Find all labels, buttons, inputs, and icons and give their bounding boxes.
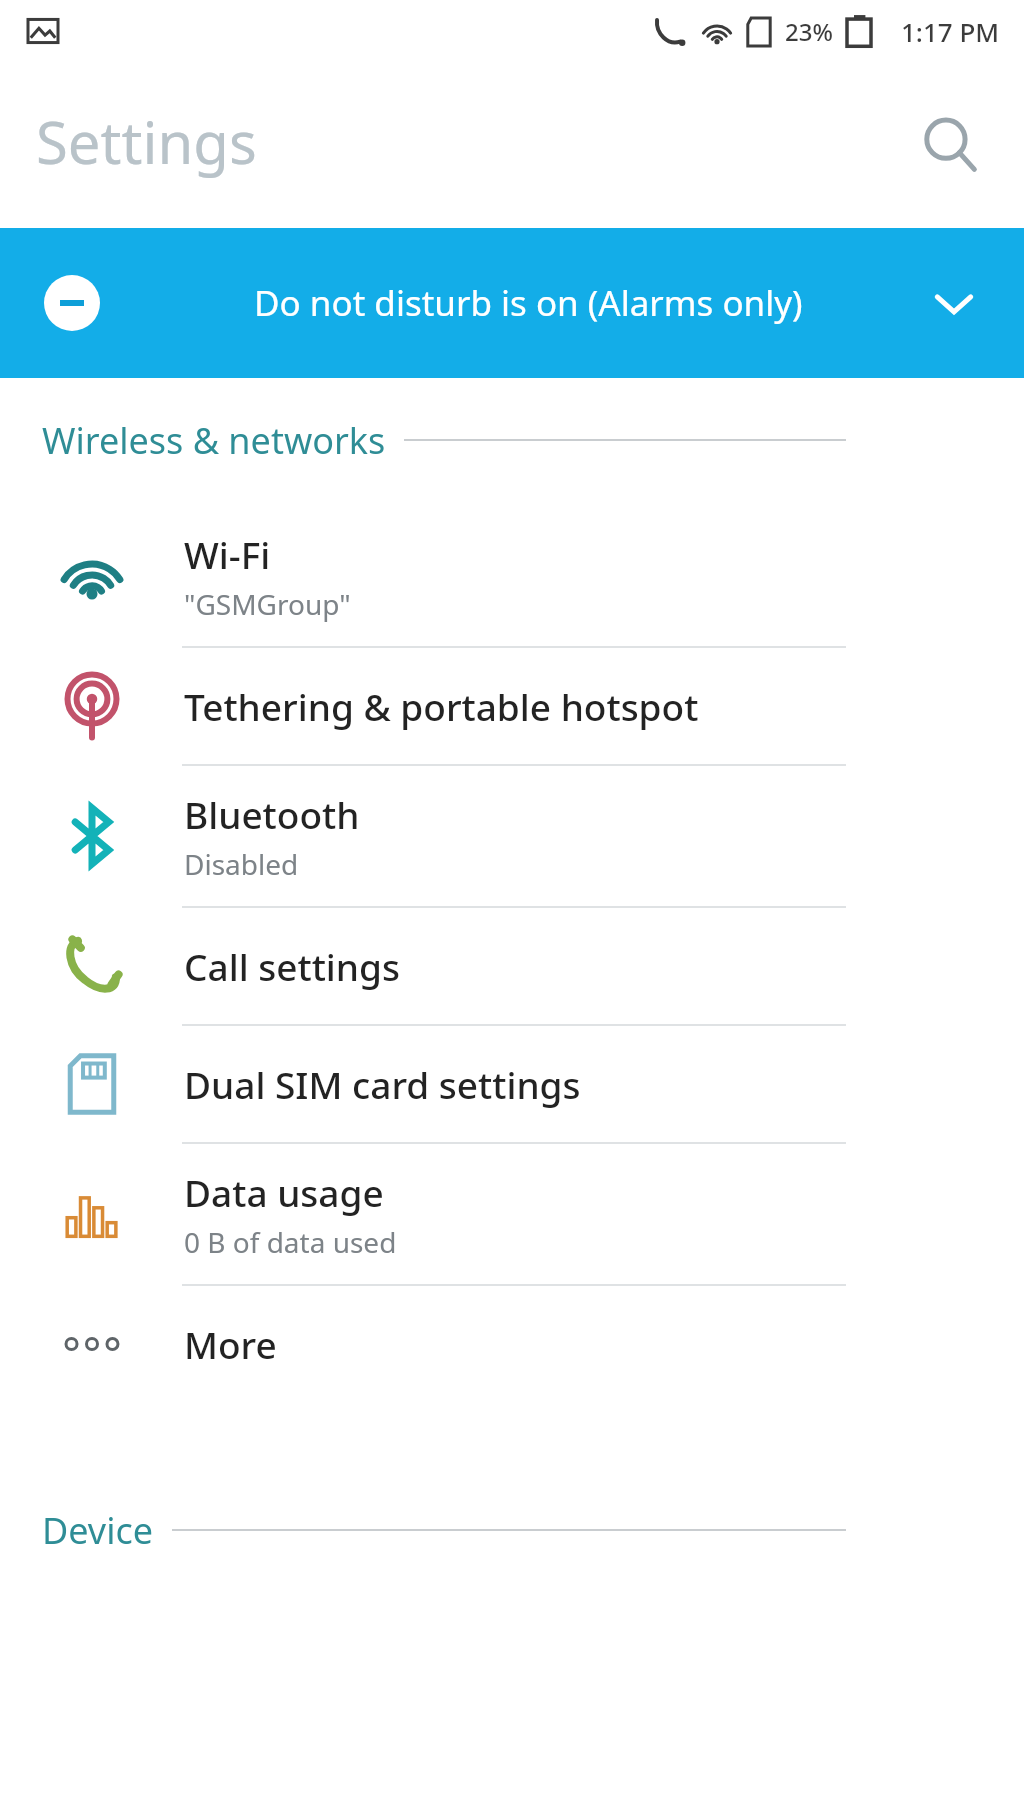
button[interactable]: Dual SIM card settings	[0, 1026, 1024, 1142]
staticText: 0 B of data used	[184, 1223, 397, 1261]
staticText: "GSMGroup"	[184, 585, 351, 623]
button[interactable]: Wi-Fi	[0, 506, 1024, 646]
staticText: Wireless & networks	[42, 416, 386, 465]
button[interactable]: Bluetooth	[0, 766, 1024, 906]
staticText: Wi-Fi	[184, 529, 271, 579]
button[interactable]: Do not disturb is on (Alarms only)	[0, 228, 1024, 378]
staticText: Disabled	[184, 845, 299, 883]
button[interactable]: Call settings	[0, 908, 1024, 1024]
staticText: Dual SIM card settings	[184, 1059, 581, 1109]
staticText: Bluetooth	[184, 789, 360, 839]
staticText: 23%	[785, 15, 833, 48]
staticText: Tethering & portable hotspot	[184, 681, 699, 731]
staticText: Settings	[36, 102, 257, 181]
button[interactable]: Expand do not disturb	[914, 263, 994, 343]
staticText: 1:17 PM	[901, 14, 1000, 49]
staticText: Data usage	[184, 1167, 384, 1217]
button[interactable]: Tethering & portable hotspot	[0, 648, 1024, 764]
button[interactable]: Data usage	[0, 1144, 1024, 1284]
button[interactable]: More	[0, 1286, 1024, 1402]
staticText: More	[184, 1319, 277, 1369]
staticText: Call settings	[184, 941, 400, 991]
button[interactable]: Search	[902, 97, 998, 193]
staticText: Do not disturb is on (Alarms only)	[254, 279, 803, 327]
staticText: Device	[42, 1506, 154, 1555]
